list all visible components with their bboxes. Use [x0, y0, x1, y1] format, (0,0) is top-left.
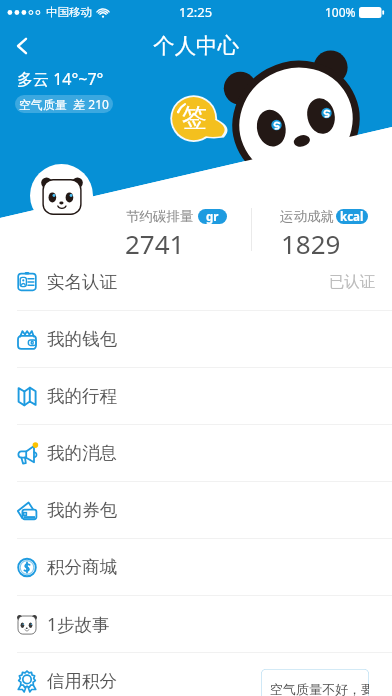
- staticText: 节约碳排量: [126, 208, 194, 225]
- staticText: 2741: [125, 226, 185, 261]
- staticText: 我的消息: [47, 442, 117, 464]
- button[interactable]: 1步故事: [0, 596, 392, 652]
- button[interactable]: 信用积分: [0, 653, 392, 696]
- staticText: 已认证: [329, 272, 376, 292]
- staticText: 空气质量 差 210: [19, 96, 109, 112]
- staticText: kcal: [340, 209, 364, 224]
- staticText: 签: [182, 102, 207, 133]
- staticText: 多云 14°~7°: [17, 68, 104, 90]
- button[interactable]: 我的消息: [0, 425, 392, 481]
- button[interactable]: 空气质量不好，要: [261, 669, 369, 696]
- button[interactable]: 运动成就: [280, 208, 368, 225]
- button[interactable]: 实名认证: [0, 254, 392, 310]
- staticText: 我的券包: [47, 499, 117, 521]
- button[interactable]: 空气质量 差 210: [15, 95, 113, 113]
- button[interactable]: 我的行程: [0, 368, 392, 424]
- button[interactable]: 我的钱包: [0, 311, 392, 367]
- staticText: 实名认证: [47, 271, 117, 293]
- staticText: 个人中心: [0, 32, 392, 59]
- staticText: 1829: [281, 226, 341, 261]
- staticText: gr: [206, 209, 219, 224]
- staticText: 积分商城: [47, 556, 117, 578]
- staticText: 我的行程: [47, 385, 117, 407]
- staticText: 运动成就: [280, 208, 334, 225]
- button[interactable]: Sign in: [168, 93, 228, 143]
- staticText: 12:25: [179, 3, 213, 21]
- button[interactable]: 积分商城: [0, 539, 392, 595]
- staticText: 中国移动: [46, 5, 92, 19]
- staticText: 1步故事: [47, 612, 110, 636]
- staticText: 100%: [325, 4, 356, 20]
- button[interactable]: Back: [4, 28, 40, 64]
- staticText: 信用积分: [47, 670, 117, 692]
- button[interactable]: 我的券包: [0, 482, 392, 538]
- button[interactable]: 节约碳排量: [126, 208, 227, 225]
- button[interactable]: Avatar: [30, 164, 93, 227]
- staticText: 空气质量不好，要: [270, 681, 369, 696]
- staticText: 我的钱包: [47, 328, 117, 350]
